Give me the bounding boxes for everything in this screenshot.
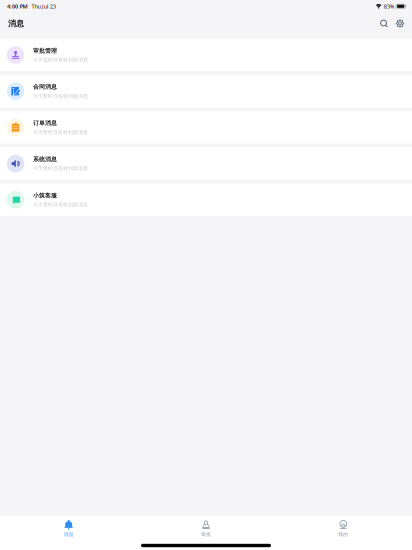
staticText: 我的 — [338, 531, 348, 537]
staticText: PM — [19, 2, 27, 10]
staticText: 订单消息 — [33, 119, 57, 127]
button[interactable]: Settings — [392, 15, 408, 31]
button[interactable]: 消息 — [0, 516, 137, 540]
staticText: 小筑客服 — [33, 192, 57, 199]
staticText: 今天暂时没有收到新消息 — [33, 57, 88, 63]
staticText: 23 — [50, 2, 56, 10]
staticText: 合同消息 — [33, 83, 57, 91]
button[interactable]: 小筑客服 — [0, 184, 412, 216]
staticText: 消息 — [8, 18, 24, 29]
button[interactable]: 订单消息 — [0, 111, 412, 143]
staticText: 今天暂时没有收到新消息 — [33, 93, 88, 99]
staticText: 系统消息 — [33, 156, 57, 163]
staticText: 消息 — [64, 531, 74, 537]
button[interactable]: 合同消息 — [0, 75, 412, 107]
staticText: Thu — [31, 2, 40, 10]
button[interactable]: 审批 — [137, 516, 275, 540]
staticText: 审批管理 — [33, 47, 57, 54]
button[interactable]: 系统消息 — [0, 147, 412, 180]
staticText: 今天暂时没有收到新消息 — [33, 201, 88, 208]
button[interactable]: Search — [376, 15, 392, 31]
staticText: 今天暂时没有收到新消息 — [33, 165, 88, 172]
staticText: 83% — [384, 2, 395, 10]
button[interactable]: 我的 — [275, 516, 412, 540]
staticText: 审批 — [201, 531, 211, 537]
staticText: 今天暂时没有收到新消息 — [33, 129, 88, 135]
staticText: 4:00 — [7, 2, 18, 10]
button[interactable]: 审批管理 — [0, 39, 412, 71]
staticText: Jul — [42, 2, 48, 10]
